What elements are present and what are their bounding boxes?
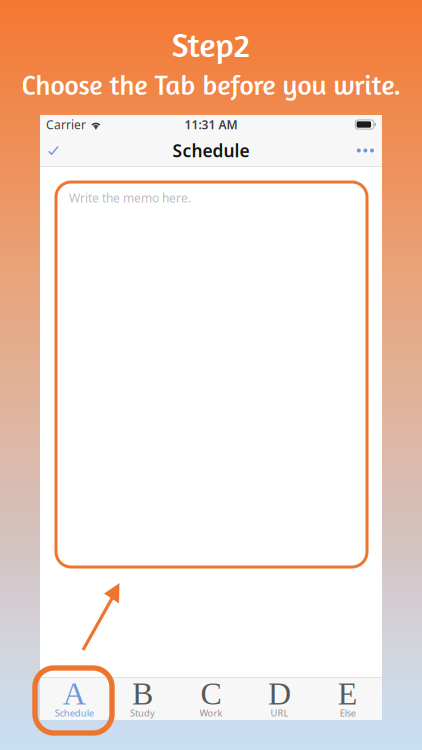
staticText: Step2: [171, 24, 250, 65]
staticText: Write the memo here.: [69, 190, 191, 206]
staticText: A: [63, 676, 86, 711]
staticText: E: [338, 676, 358, 711]
staticText: Study: [130, 707, 155, 719]
button[interactable]: D: [245, 677, 314, 720]
staticText: B: [132, 676, 153, 711]
staticText: C: [200, 676, 221, 711]
staticText: Choose the Tab before you write.: [21, 68, 400, 101]
staticText: Schedule: [55, 707, 94, 719]
button[interactable]: B: [108, 677, 177, 720]
button[interactable]: More: [332, 134, 382, 167]
button[interactable]: Done: [40, 134, 90, 167]
button[interactable]: A: [40, 677, 108, 720]
staticText: Work: [199, 707, 222, 719]
button[interactable]: C: [177, 677, 245, 720]
staticText: D: [268, 676, 291, 711]
staticText: Else: [340, 707, 356, 719]
button[interactable]: E: [314, 677, 382, 720]
staticText: Schedule: [172, 139, 249, 162]
staticText: URL: [270, 707, 288, 719]
staticText: 11:31 AM: [184, 116, 237, 132]
staticText: Carrier: [46, 116, 86, 132]
